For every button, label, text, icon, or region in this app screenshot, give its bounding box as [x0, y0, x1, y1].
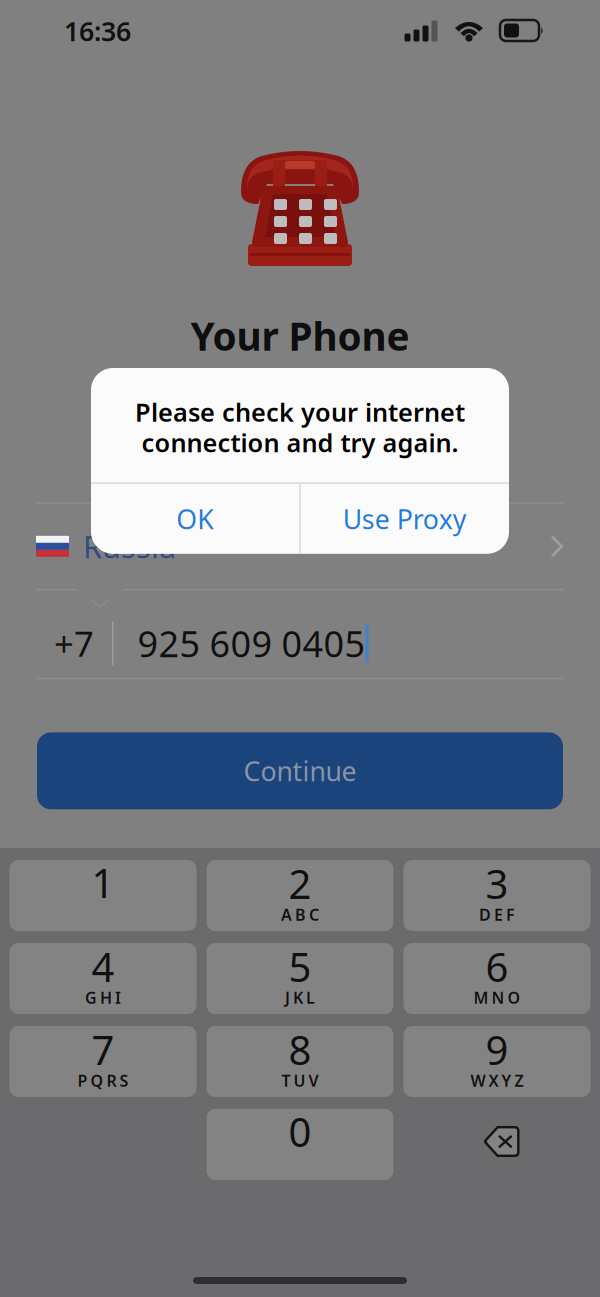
button[interactable]: 7 — [9, 1026, 196, 1097]
staticText: A B C — [281, 904, 319, 925]
staticText: D E F — [479, 904, 515, 925]
staticText: OK — [176, 501, 214, 536]
button[interactable]: 5 — [206, 943, 393, 1014]
button[interactable]: 1 — [9, 860, 196, 931]
staticText: 925 609 0405 — [137, 619, 365, 667]
staticText: T U V — [281, 1070, 318, 1091]
staticText: J K L — [285, 987, 315, 1008]
staticText: 5 — [288, 940, 311, 993]
button[interactable]: 8 — [206, 1026, 393, 1097]
button[interactable]: Use Proxy — [301, 484, 509, 554]
staticText: 2 — [288, 857, 311, 910]
staticText: 16:36 — [64, 13, 131, 49]
staticText: 3 — [485, 857, 508, 910]
staticText: 7 — [91, 1023, 114, 1076]
button[interactable]: 4 — [9, 943, 196, 1014]
button[interactable]: 3 — [403, 860, 590, 931]
staticText: P Q R S — [77, 1070, 128, 1091]
button[interactable]: 9 — [403, 1026, 590, 1097]
staticText: 8 — [288, 1023, 311, 1076]
staticText: W X Y Z — [470, 1070, 523, 1091]
staticText: 1 — [91, 856, 114, 909]
button[interactable]: OK — [91, 484, 299, 554]
staticText: Russia — [83, 526, 176, 567]
staticText: Please check your internet — [135, 395, 465, 429]
staticText: Continue — [243, 753, 356, 788]
staticText: connection and try again. — [141, 426, 458, 459]
button[interactable]: 0 — [206, 1109, 393, 1180]
button[interactable]: Continue — [37, 732, 563, 809]
staticText: Use Proxy — [343, 501, 467, 536]
staticText: +7 — [54, 620, 94, 666]
staticText: 0 — [288, 1105, 311, 1158]
staticText: 9 — [485, 1023, 508, 1076]
button[interactable]: 6 — [403, 943, 590, 1014]
button[interactable]: 2 — [206, 860, 393, 931]
staticText: M N O — [473, 987, 520, 1008]
staticText: G H I — [85, 987, 121, 1008]
staticText: 6 — [485, 940, 508, 993]
staticText: 4 — [91, 940, 114, 993]
button[interactable]: Russia — [0, 502, 600, 589]
staticText: Your Phone — [190, 310, 409, 361]
button[interactable]: Delete — [403, 1109, 590, 1180]
